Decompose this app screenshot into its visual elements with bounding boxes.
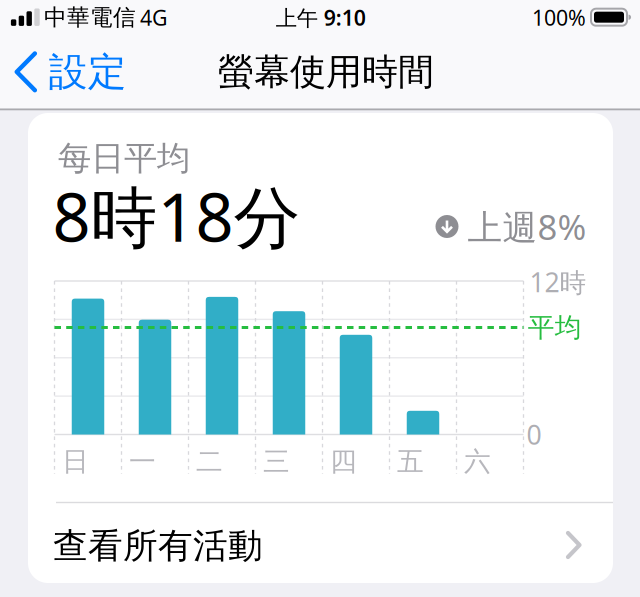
staticText: 設定 xyxy=(49,48,127,96)
staticText: 螢幕使用時間 xyxy=(218,50,434,94)
staticText: 查看所有活動 xyxy=(53,525,263,567)
staticText: 二 xyxy=(196,445,223,478)
staticText: 12時 xyxy=(529,264,586,300)
button[interactable]: 查看所有活動 xyxy=(28,503,613,583)
staticText: 上午 9:10 xyxy=(276,3,366,32)
button[interactable]: 設定 xyxy=(15,48,127,96)
staticText: 上週8% xyxy=(467,203,586,249)
staticText: 中華電信 xyxy=(44,4,136,31)
staticText: 4G xyxy=(140,3,168,32)
staticText: 五 xyxy=(397,445,424,478)
staticText: 每日平均 xyxy=(58,138,190,179)
staticText: 0 xyxy=(526,417,541,452)
staticText: 100% xyxy=(532,3,586,32)
staticText: 平均 xyxy=(528,311,582,344)
staticText: 六 xyxy=(464,445,491,478)
staticText: 三 xyxy=(263,445,290,478)
staticText: 8時18分 xyxy=(52,172,300,260)
staticText: 四 xyxy=(330,445,357,478)
staticText: 一 xyxy=(129,445,156,478)
staticText: 日 xyxy=(62,445,89,478)
